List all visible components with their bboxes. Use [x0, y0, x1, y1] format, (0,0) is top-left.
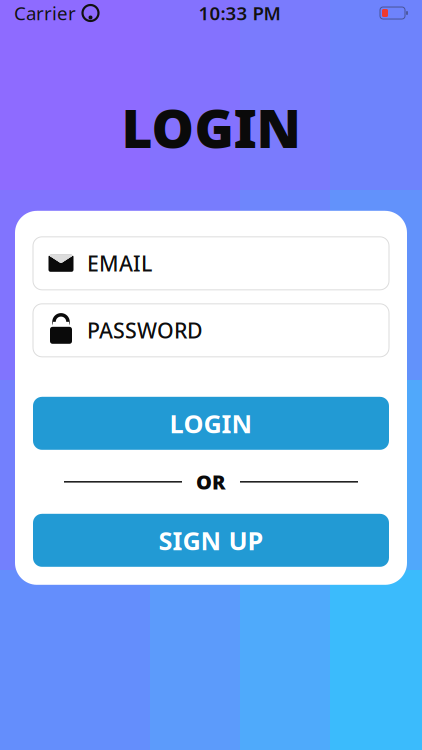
- staticText: EMAIL: [87, 249, 152, 277]
- staticText: OR: [196, 468, 226, 495]
- button[interactable]: SIGN UP: [33, 514, 389, 567]
- staticText: PASSWORD: [87, 316, 203, 344]
- button[interactable]: PASSWORD: [33, 304, 389, 357]
- staticText: 10:33 PM: [198, 1, 280, 25]
- staticText: LOGIN: [169, 406, 252, 440]
- staticText: SIGN UP: [158, 523, 263, 557]
- button[interactable]: EMAIL: [33, 237, 389, 290]
- staticText: Carrier: [14, 1, 76, 25]
- staticText: LOGIN: [121, 92, 300, 163]
- button[interactable]: LOGIN: [33, 397, 389, 450]
